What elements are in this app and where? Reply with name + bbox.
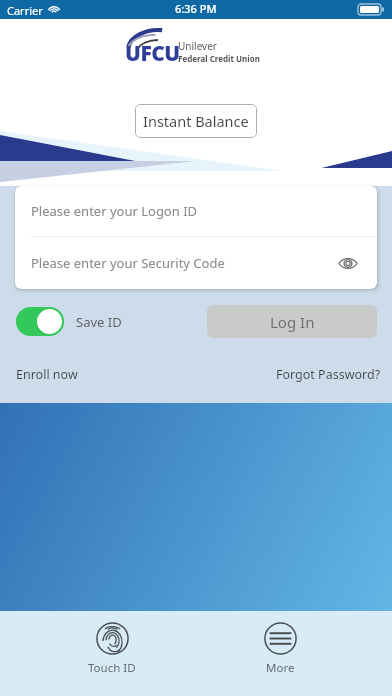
staticText: Instant Balance	[143, 111, 249, 131]
button[interactable]: Log In	[207, 305, 377, 338]
staticText: Forgot Password?	[276, 366, 381, 383]
button[interactable]: Save ID toggle	[16, 307, 64, 336]
staticText: Log In	[270, 312, 315, 332]
staticText: UFCU	[125, 39, 180, 68]
staticText: Please enter your Logon ID	[31, 202, 198, 220]
staticText: Please enter your Security Code	[31, 254, 225, 272]
staticText: Unilever	[178, 39, 217, 53]
staticText: Touch ID	[88, 660, 136, 676]
staticText: Save ID	[76, 313, 122, 331]
button[interactable]: More	[225, 611, 335, 696]
staticText: 6:36 PM	[175, 1, 217, 16]
staticText: Carrier	[7, 3, 43, 18]
button[interactable]: Instant Balance	[135, 104, 257, 138]
staticText: Federal Credit Union	[178, 53, 260, 64]
button[interactable]: Please enter your Logon ID	[15, 186, 377, 236]
button[interactable]: Enroll now	[16, 366, 78, 383]
staticText: Enroll now	[16, 366, 78, 383]
button[interactable]: Show security code	[333, 248, 363, 278]
staticText: More	[266, 660, 295, 676]
button[interactable]: Forgot Password?	[276, 366, 381, 383]
button[interactable]: Touch ID	[57, 611, 167, 696]
button[interactable]: Please enter your Security Code	[15, 237, 377, 289]
